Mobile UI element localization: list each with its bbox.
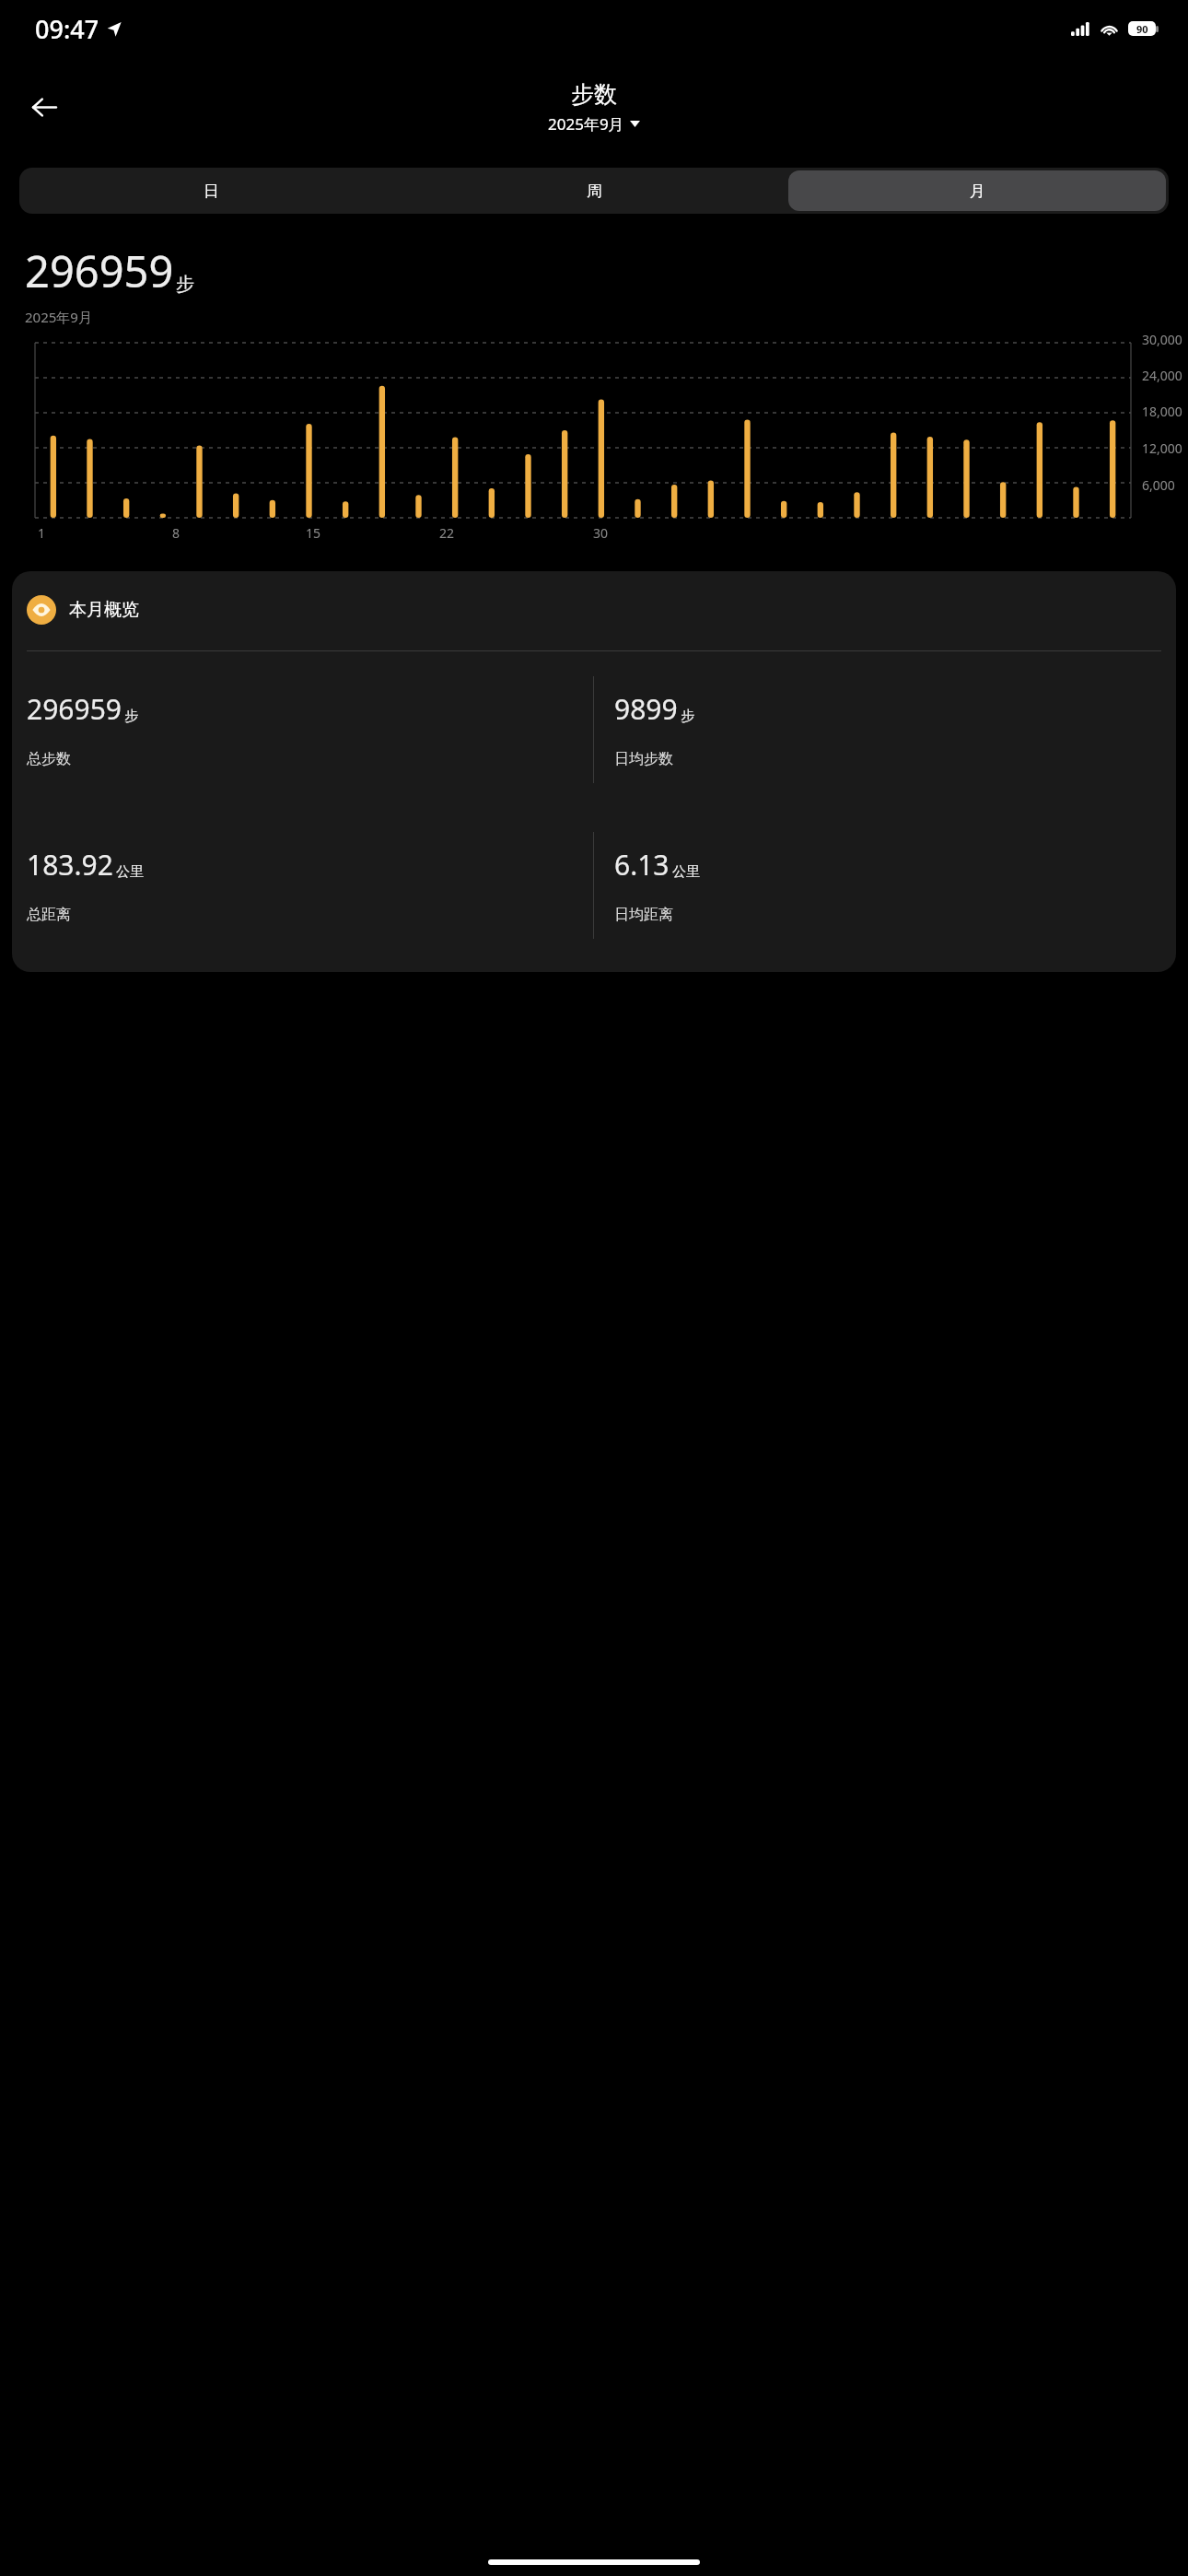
staticText: 本月概览	[69, 599, 139, 621]
staticText: 公里	[672, 863, 700, 881]
staticText: 22	[439, 524, 455, 542]
staticText: 9899	[614, 690, 678, 728]
staticText: 步	[681, 708, 694, 725]
staticText: 6.13	[614, 846, 670, 884]
staticText: 15	[306, 524, 321, 542]
staticText: 步	[176, 273, 194, 296]
staticText: 日	[204, 181, 219, 201]
staticText: 日均步数	[614, 750, 673, 768]
button[interactable]: Back	[18, 81, 70, 133]
button[interactable]: 2025年9月	[548, 113, 640, 135]
staticText: 24,000	[1142, 367, 1182, 384]
staticText: 09:47	[35, 12, 99, 46]
staticText: 8	[172, 524, 181, 542]
staticText: 2025年9月	[548, 113, 624, 135]
staticText: 月	[970, 181, 985, 201]
staticText: 30,000	[1142, 331, 1182, 348]
staticText: 30	[593, 524, 609, 542]
staticText: 日均距离	[614, 906, 673, 924]
staticText: 6,000	[1142, 476, 1175, 494]
staticText: 步数	[571, 80, 617, 109]
staticText: 周	[587, 181, 602, 201]
staticText: 296959	[25, 241, 174, 300]
staticText: 公里	[116, 863, 144, 881]
staticText: 296959	[27, 690, 122, 728]
button[interactable]: 月	[788, 170, 1166, 211]
staticText: 12,000	[1142, 439, 1182, 457]
staticText: 步	[124, 708, 138, 725]
button[interactable]: 日	[22, 170, 400, 211]
staticText: 2025年9月	[25, 308, 92, 326]
button[interactable]: 周	[405, 170, 783, 211]
staticText: 18,000	[1142, 403, 1182, 420]
staticText: 总步数	[27, 750, 71, 768]
staticText: 183.92	[27, 846, 113, 884]
staticText: 90	[1136, 22, 1148, 36]
button[interactable]: 本月概览	[12, 571, 1176, 972]
staticText: 总距离	[27, 906, 71, 924]
staticText: 1	[38, 524, 46, 542]
